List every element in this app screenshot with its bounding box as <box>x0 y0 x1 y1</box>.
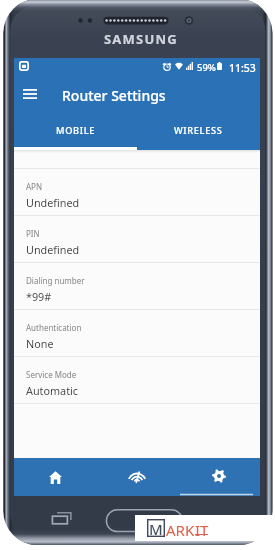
staticText: SAMSUNG <box>104 30 178 48</box>
staticText: 59% <box>197 61 216 74</box>
button[interactable]: APN <box>14 169 260 215</box>
button[interactable]: Wireless <box>96 458 178 496</box>
staticText: ARK <box>166 520 195 540</box>
button[interactable]: Service Mode <box>14 357 260 403</box>
staticText: Authentication <box>26 322 82 333</box>
staticText: Service Mode <box>26 369 77 380</box>
button[interactable]: Home <box>14 458 96 496</box>
staticText: PIN <box>26 228 40 239</box>
staticText: *99# <box>26 289 52 304</box>
staticText: Undefined <box>26 242 80 257</box>
button[interactable]: PIN <box>14 216 260 262</box>
staticText: Router Settings <box>62 86 166 105</box>
staticText: None <box>26 336 54 351</box>
staticText: M <box>149 519 163 537</box>
staticText: Automatic <box>26 383 79 398</box>
staticText: APN <box>26 181 43 192</box>
button[interactable]: Authentication <box>14 310 260 356</box>
button[interactable]: MOBILE <box>14 114 137 150</box>
button[interactable]: WIRELESS <box>137 114 260 150</box>
staticText: WIRELESS <box>174 124 223 137</box>
staticText: IT <box>195 520 209 540</box>
button[interactable]: Open navigation menu <box>16 81 44 107</box>
staticText: Dialing number <box>26 275 85 286</box>
staticText: Undefined <box>26 195 80 210</box>
button[interactable]: Settings <box>178 458 260 496</box>
button[interactable]: Dialing number <box>14 263 260 309</box>
staticText: MOBILE <box>56 124 96 137</box>
staticText: 11:53 <box>229 61 256 75</box>
